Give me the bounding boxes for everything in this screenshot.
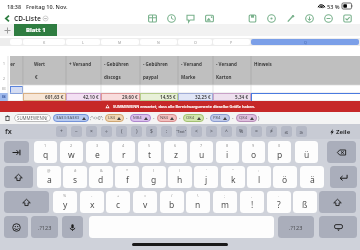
button[interactable]: Column Q selected <box>251 39 359 45</box>
button[interactable]: Back <box>0 12 14 24</box>
button[interactable]: Format <box>281 12 300 24</box>
button[interactable]: 5,34 € <box>213 93 249 101</box>
button[interactable]: / <box>160 191 184 213</box>
button[interactable]: $A$3:$A$83 <box>56 114 86 122</box>
button[interactable]: ' <box>194 166 218 188</box>
button[interactable]: ) <box>131 126 142 137</box>
button[interactable]: 14,55 € <box>140 93 176 101</box>
button[interactable]: ÷ <box>101 126 112 137</box>
button[interactable]: emoji <box>4 216 28 238</box>
button[interactable]: P <box>213 39 250 45</box>
button[interactable]: ^ <box>221 126 232 137</box>
button[interactable]: < <box>191 126 202 137</box>
button[interactable]: mic <box>62 216 83 238</box>
button[interactable]: 601,63 € <box>23 93 64 101</box>
button[interactable]: N <box>140 39 177 45</box>
button[interactable]: ( <box>116 126 127 137</box>
button[interactable]: ü <box>295 141 318 163</box>
button[interactable]: : <box>161 126 172 137</box>
button[interactable]: kb <box>319 216 357 238</box>
button[interactable]: 42,10 € <box>66 93 99 101</box>
button[interactable]: \ <box>186 191 210 213</box>
button[interactable]: M84 <box>133 114 148 122</box>
button[interactable]: enter <box>330 166 357 188</box>
button[interactable]: 6 <box>164 141 187 163</box>
button[interactable]: P84 <box>213 114 227 122</box>
button[interactable]: - <box>80 191 104 213</box>
button[interactable]: = <box>251 126 262 137</box>
button[interactable]: N84 <box>160 114 174 122</box>
button[interactable]: Share <box>300 12 319 24</box>
button[interactable]: L84 <box>108 114 121 122</box>
button[interactable]: Table <box>143 12 162 24</box>
button[interactable]: Image <box>200 12 219 24</box>
button[interactable]: & <box>89 166 113 188</box>
button[interactable]: 32,25 € <box>178 93 211 101</box>
button[interactable]: 7 <box>190 141 213 163</box>
button[interactable]: ) <box>168 166 192 188</box>
button[interactable]: shift <box>4 166 33 188</box>
button[interactable]: : <box>247 166 271 188</box>
button[interactable]: 4 <box>112 141 135 163</box>
button[interactable]: shift <box>319 191 356 213</box>
button[interactable]: ( <box>142 166 166 188</box>
button[interactable]: % <box>53 191 77 213</box>
button[interactable]: ≠ <box>266 126 277 137</box>
button[interactable]: > <box>206 126 217 137</box>
button[interactable]: Delete formula <box>0 112 14 124</box>
button[interactable]: $ <box>146 126 157 137</box>
button[interactable]: Done <box>338 12 357 24</box>
button[interactable]: 29,60 € <box>101 93 138 101</box>
button[interactable]: 5 <box>138 141 161 163</box>
button[interactable]: tab <box>4 141 29 163</box>
button[interactable]: Add sheet <box>0 24 14 36</box>
button[interactable]: Blatt 1 <box>14 24 57 36</box>
button[interactable]: 3 <box>86 141 109 163</box>
button[interactable]: shift <box>4 191 49 213</box>
button[interactable]: Q84 <box>239 114 254 122</box>
button[interactable]: " <box>221 166 245 188</box>
button[interactable]: % <box>236 126 247 137</box>
button[interactable]: 1 <box>34 141 57 163</box>
button[interactable]: ≥ <box>296 126 307 137</box>
button[interactable]: ä <box>300 166 324 188</box>
button[interactable]: "Text" <box>176 126 187 137</box>
button[interactable]: ö <box>273 166 297 188</box>
button[interactable]: Help <box>262 12 281 24</box>
button[interactable]: Functions <box>5 124 17 139</box>
button[interactable]: Selected cell <box>251 93 360 102</box>
button[interactable]: = <box>133 191 157 213</box>
button[interactable] <box>10 86 23 94</box>
button[interactable]: , <box>240 191 264 213</box>
button[interactable]: + <box>106 191 130 213</box>
button[interactable]: O84 <box>186 114 201 122</box>
button[interactable]: Save <box>243 12 262 24</box>
button[interactable]: Comment <box>181 12 200 24</box>
button[interactable] <box>251 93 358 101</box>
button[interactable]: .?123 <box>278 216 314 238</box>
button[interactable]: M <box>101 39 139 45</box>
button[interactable]: ; <box>213 191 237 213</box>
button[interactable]: Hide <box>319 12 338 24</box>
button[interactable]: 0 <box>268 141 291 163</box>
button[interactable]: L <box>66 39 100 45</box>
button[interactable]: ß <box>293 191 317 213</box>
button[interactable]: ≤ <box>281 126 292 137</box>
button[interactable]: × <box>86 126 97 137</box>
button[interactable] <box>10 93 21 101</box>
button[interactable]: * <box>115 166 139 188</box>
button[interactable]: K <box>23 39 65 45</box>
button[interactable]: # <box>63 166 87 188</box>
button[interactable]: 2 <box>60 141 83 163</box>
button[interactable]: History <box>162 12 181 24</box>
button[interactable]: O <box>178 39 212 45</box>
button[interactable]: + <box>56 126 67 137</box>
button[interactable]: @ <box>37 166 61 188</box>
button[interactable]: bs <box>327 141 356 163</box>
button[interactable]: .?123 <box>31 216 58 238</box>
button[interactable]: CD-Liste <box>14 12 48 24</box>
button[interactable]: − <box>71 126 82 137</box>
button[interactable]: 9 <box>242 141 265 163</box>
